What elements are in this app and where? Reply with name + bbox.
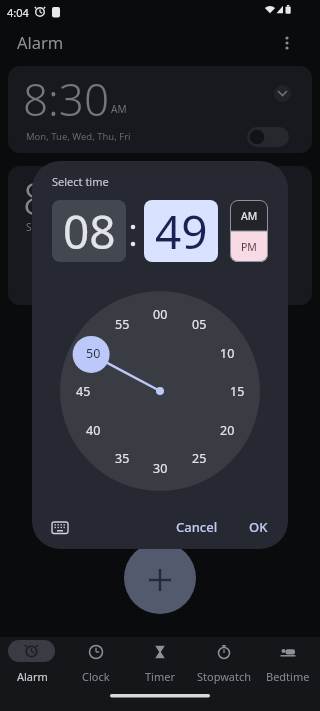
staticText: Alarm (17, 669, 48, 684)
staticText: 50 (86, 345, 101, 361)
staticText: Mon, Tue, Wed, Thu, Fri (26, 130, 131, 143)
button[interactable] (247, 127, 289, 147)
staticText: 35 (115, 450, 130, 466)
staticText: 30 (153, 460, 168, 476)
staticText: AM (241, 209, 258, 223)
staticText: AM (111, 102, 127, 116)
staticText: 40 (86, 422, 101, 438)
button[interactable] (274, 85, 291, 102)
staticText: 05 (192, 316, 207, 332)
button[interactable]: PM (230, 231, 268, 262)
staticText: Clock (82, 669, 110, 684)
button[interactable] (124, 542, 196, 614)
staticText: 25 (192, 450, 207, 466)
button[interactable] (0, 637, 64, 687)
staticText: 49 (155, 200, 208, 262)
staticText: Alarm (17, 31, 64, 53)
staticText: 8:30 (23, 69, 110, 129)
button[interactable] (44, 509, 80, 541)
staticText: S (26, 220, 32, 234)
button[interactable] (128, 637, 192, 687)
staticText: 10 (220, 345, 235, 361)
button[interactable] (256, 637, 320, 687)
staticText: Stopwatch (197, 669, 252, 684)
button[interactable]: 8:30 (8, 66, 312, 153)
staticText: PM (241, 240, 257, 254)
button[interactable]: AM (230, 200, 268, 231)
button[interactable] (64, 637, 128, 687)
button[interactable]: 8:30 (8, 166, 312, 305)
button[interactable]: OK (237, 513, 279, 541)
staticText: 8:30 (23, 168, 110, 228)
staticText: OK (249, 518, 268, 536)
staticText: Bedtime (266, 669, 310, 684)
staticText: 55 (115, 316, 130, 332)
button[interactable]: Cancel (167, 513, 227, 541)
staticText: Timer (145, 669, 175, 684)
staticText: 00 (153, 306, 168, 322)
button[interactable] (192, 637, 256, 687)
button[interactable]: 08 (52, 200, 126, 262)
staticText: 4:04 (7, 5, 29, 20)
staticText: 20 (220, 422, 235, 438)
staticText: Cancel (176, 518, 218, 536)
button[interactable]: 49 (144, 200, 218, 262)
staticText: Select time (52, 174, 109, 189)
staticText: 15 (230, 383, 245, 399)
staticText: 08 (63, 200, 116, 262)
staticText: 45 (76, 383, 91, 399)
